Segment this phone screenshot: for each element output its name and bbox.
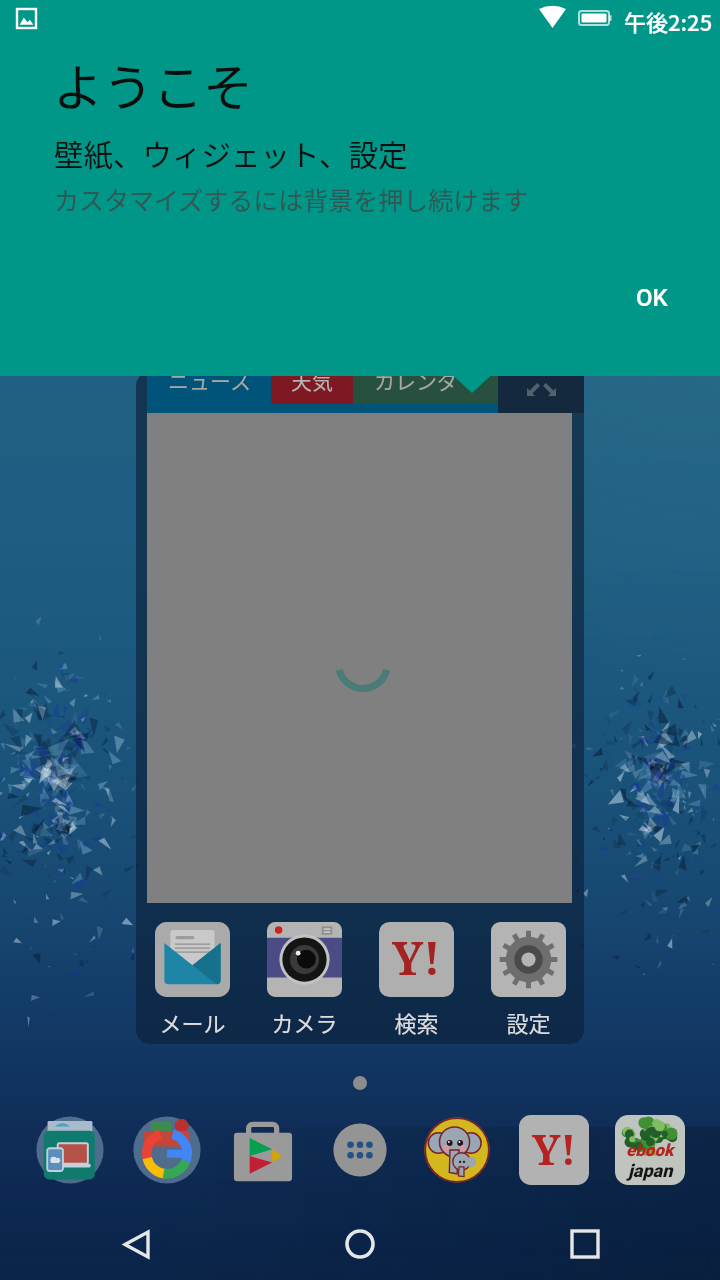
button[interactable]: Play Store bbox=[221, 1108, 305, 1192]
staticText: 午後2:25 bbox=[624, 5, 713, 37]
staticText: ニュース bbox=[168, 365, 251, 395]
staticText: OK bbox=[636, 284, 668, 312]
staticText: Y! bbox=[532, 1121, 577, 1177]
button[interactable]: 天気 bbox=[271, 364, 353, 396]
staticText: メール bbox=[159, 1006, 226, 1038]
button[interactable]: ebookjapan bbox=[608, 1108, 692, 1192]
button[interactable]: Recent apps bbox=[547, 1206, 623, 1280]
staticText: カスタマイズするには背景を押し続けます bbox=[54, 181, 529, 217]
staticText: Y! bbox=[392, 927, 441, 988]
button[interactable]: メール bbox=[136, 922, 248, 1038]
button[interactable]: Collapse widget bbox=[498, 364, 584, 396]
staticText: ebook bbox=[626, 1140, 674, 1160]
button[interactable]: Home bbox=[322, 1206, 398, 1280]
button[interactable] bbox=[136, 372, 584, 1044]
button[interactable]: 設定 bbox=[472, 922, 584, 1038]
staticText: 検索 bbox=[394, 1006, 439, 1038]
staticText: ようこそ bbox=[53, 48, 253, 120]
button[interactable]: Elephant bbox=[415, 1108, 499, 1192]
staticText: japan bbox=[628, 1160, 673, 1181]
button[interactable]: ニュース bbox=[147, 364, 271, 396]
button[interactable]: Support bbox=[28, 1108, 112, 1192]
button[interactable]: Google bbox=[125, 1108, 209, 1192]
button[interactable]: カメラ bbox=[248, 922, 360, 1038]
staticText: カメラ bbox=[271, 1006, 338, 1038]
staticText: 設定 bbox=[506, 1006, 551, 1038]
button[interactable]: All apps bbox=[318, 1108, 402, 1192]
button[interactable]: Back bbox=[98, 1206, 174, 1280]
button[interactable]: Yahoo bbox=[512, 1108, 596, 1192]
button[interactable]: Y! bbox=[360, 922, 472, 1038]
button[interactable]: OK bbox=[604, 268, 700, 328]
staticText: 壁紙、ウィジェット、設定 bbox=[54, 132, 408, 175]
staticText: カレンダ bbox=[374, 365, 458, 395]
button[interactable]: カレンダ bbox=[353, 364, 498, 396]
staticText: 天気 bbox=[291, 365, 333, 395]
